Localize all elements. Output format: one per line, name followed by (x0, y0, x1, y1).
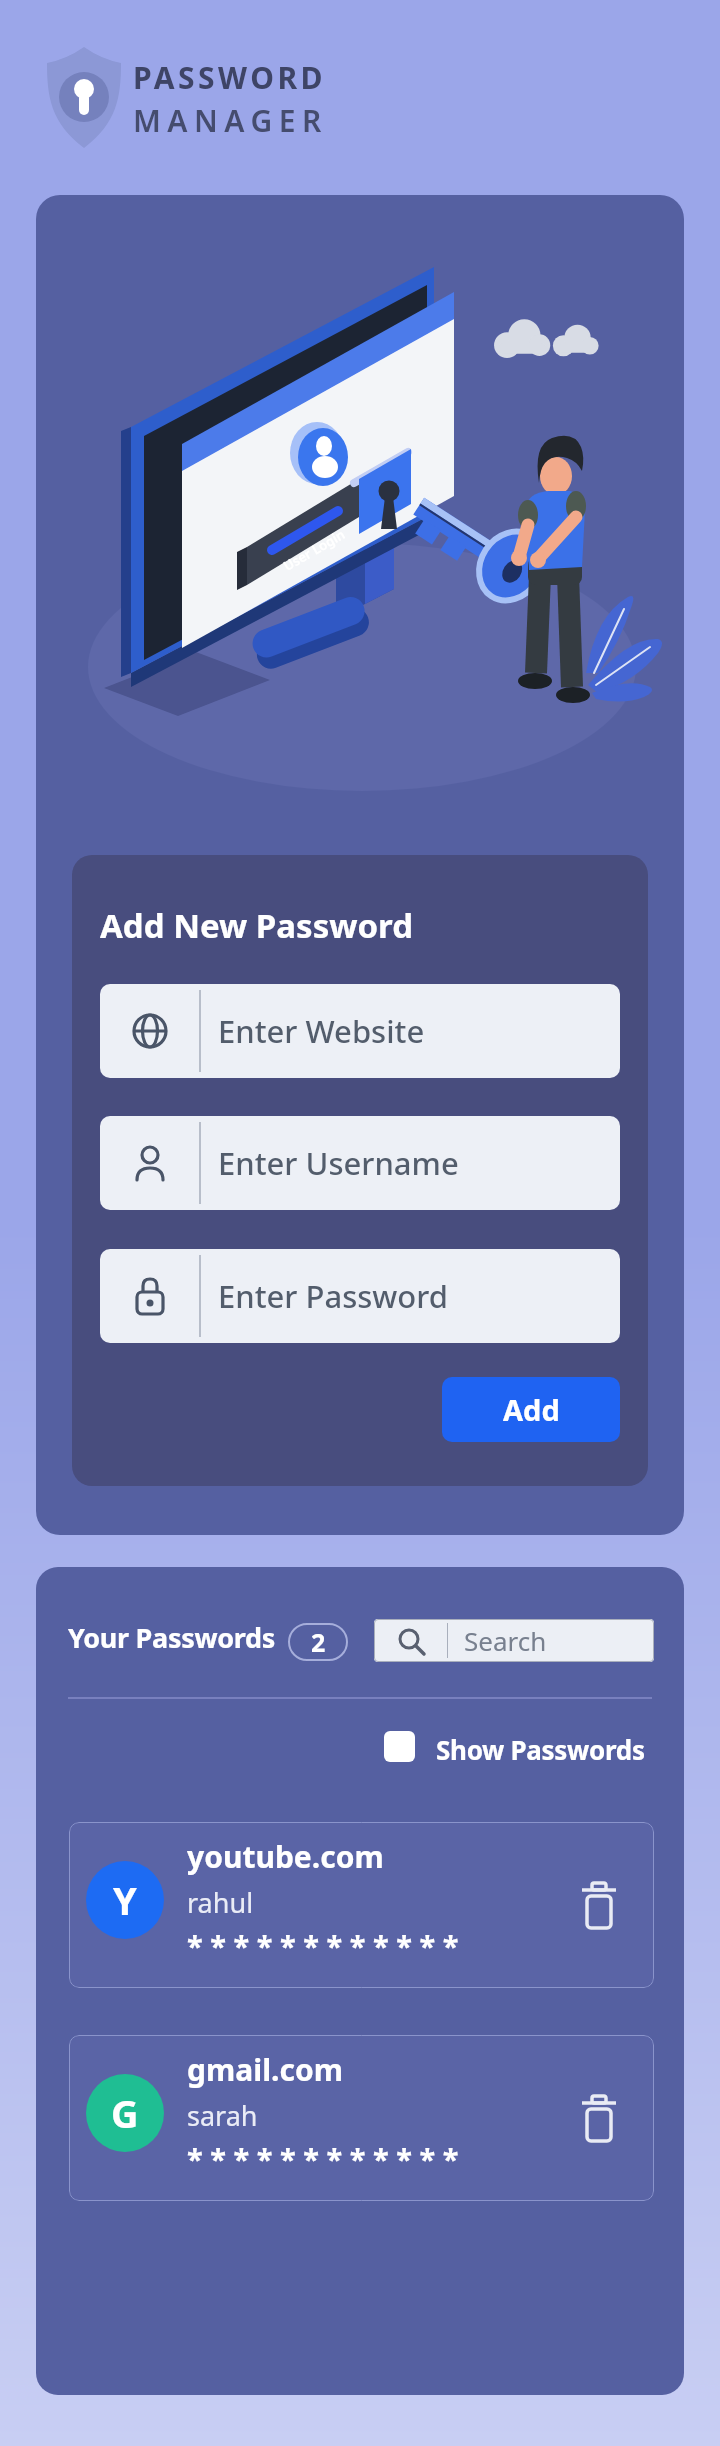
staticText: Y (113, 1874, 137, 1926)
button[interactable] (581, 2096, 617, 2144)
staticText: Add (503, 1390, 560, 1429)
staticText: gmail.com (187, 2049, 343, 2090)
staticText: Enter Password (218, 1275, 448, 1317)
button[interactable] (581, 1883, 617, 1931)
staticText: Show Passwords (436, 1732, 645, 1767)
staticText: sarah (187, 2097, 258, 2134)
staticText: Enter Website (218, 1010, 425, 1052)
button[interactable]: Enter Password (100, 1249, 620, 1343)
button[interactable]: Enter Username (100, 1116, 620, 1210)
staticText: Enter Username (218, 1142, 459, 1184)
button[interactable]: Add (442, 1377, 620, 1442)
staticText: Search (464, 1623, 547, 1658)
staticText: PASSWORD (133, 57, 327, 98)
staticText: Your Passwords (68, 1619, 276, 1656)
staticText: MANAGER (133, 100, 328, 141)
button[interactable]: Y (69, 1822, 654, 1988)
staticText: User Login (280, 525, 348, 575)
button[interactable] (384, 1731, 415, 1762)
button[interactable]: Search (374, 1619, 654, 1662)
staticText: 2 (311, 1625, 326, 1659)
button[interactable]: Enter Website (100, 984, 620, 1078)
staticText: * * * * * * * * * * * * (187, 1926, 459, 1965)
button[interactable]: G (69, 2035, 654, 2201)
staticText: Add New Password (100, 903, 414, 948)
staticText: G (111, 2087, 139, 2139)
staticText: rahul (187, 1884, 254, 1921)
staticText: * * * * * * * * * * * * (187, 2139, 459, 2178)
staticText: youtube.com (187, 1836, 384, 1877)
